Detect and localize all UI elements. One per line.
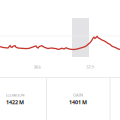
- staticText: 57.9: [86, 64, 93, 70]
- button[interactable]: GAIN: [47, 78, 109, 120]
- staticText: 38.6: [33, 64, 40, 70]
- button[interactable]: ELEVATION: [0, 78, 46, 120]
- staticText: ELEVATION: [5, 92, 24, 98]
- staticText: 1401 M: [69, 99, 87, 106]
- staticText: GAIN: [73, 92, 83, 98]
- staticText: 1422 M: [6, 99, 24, 106]
